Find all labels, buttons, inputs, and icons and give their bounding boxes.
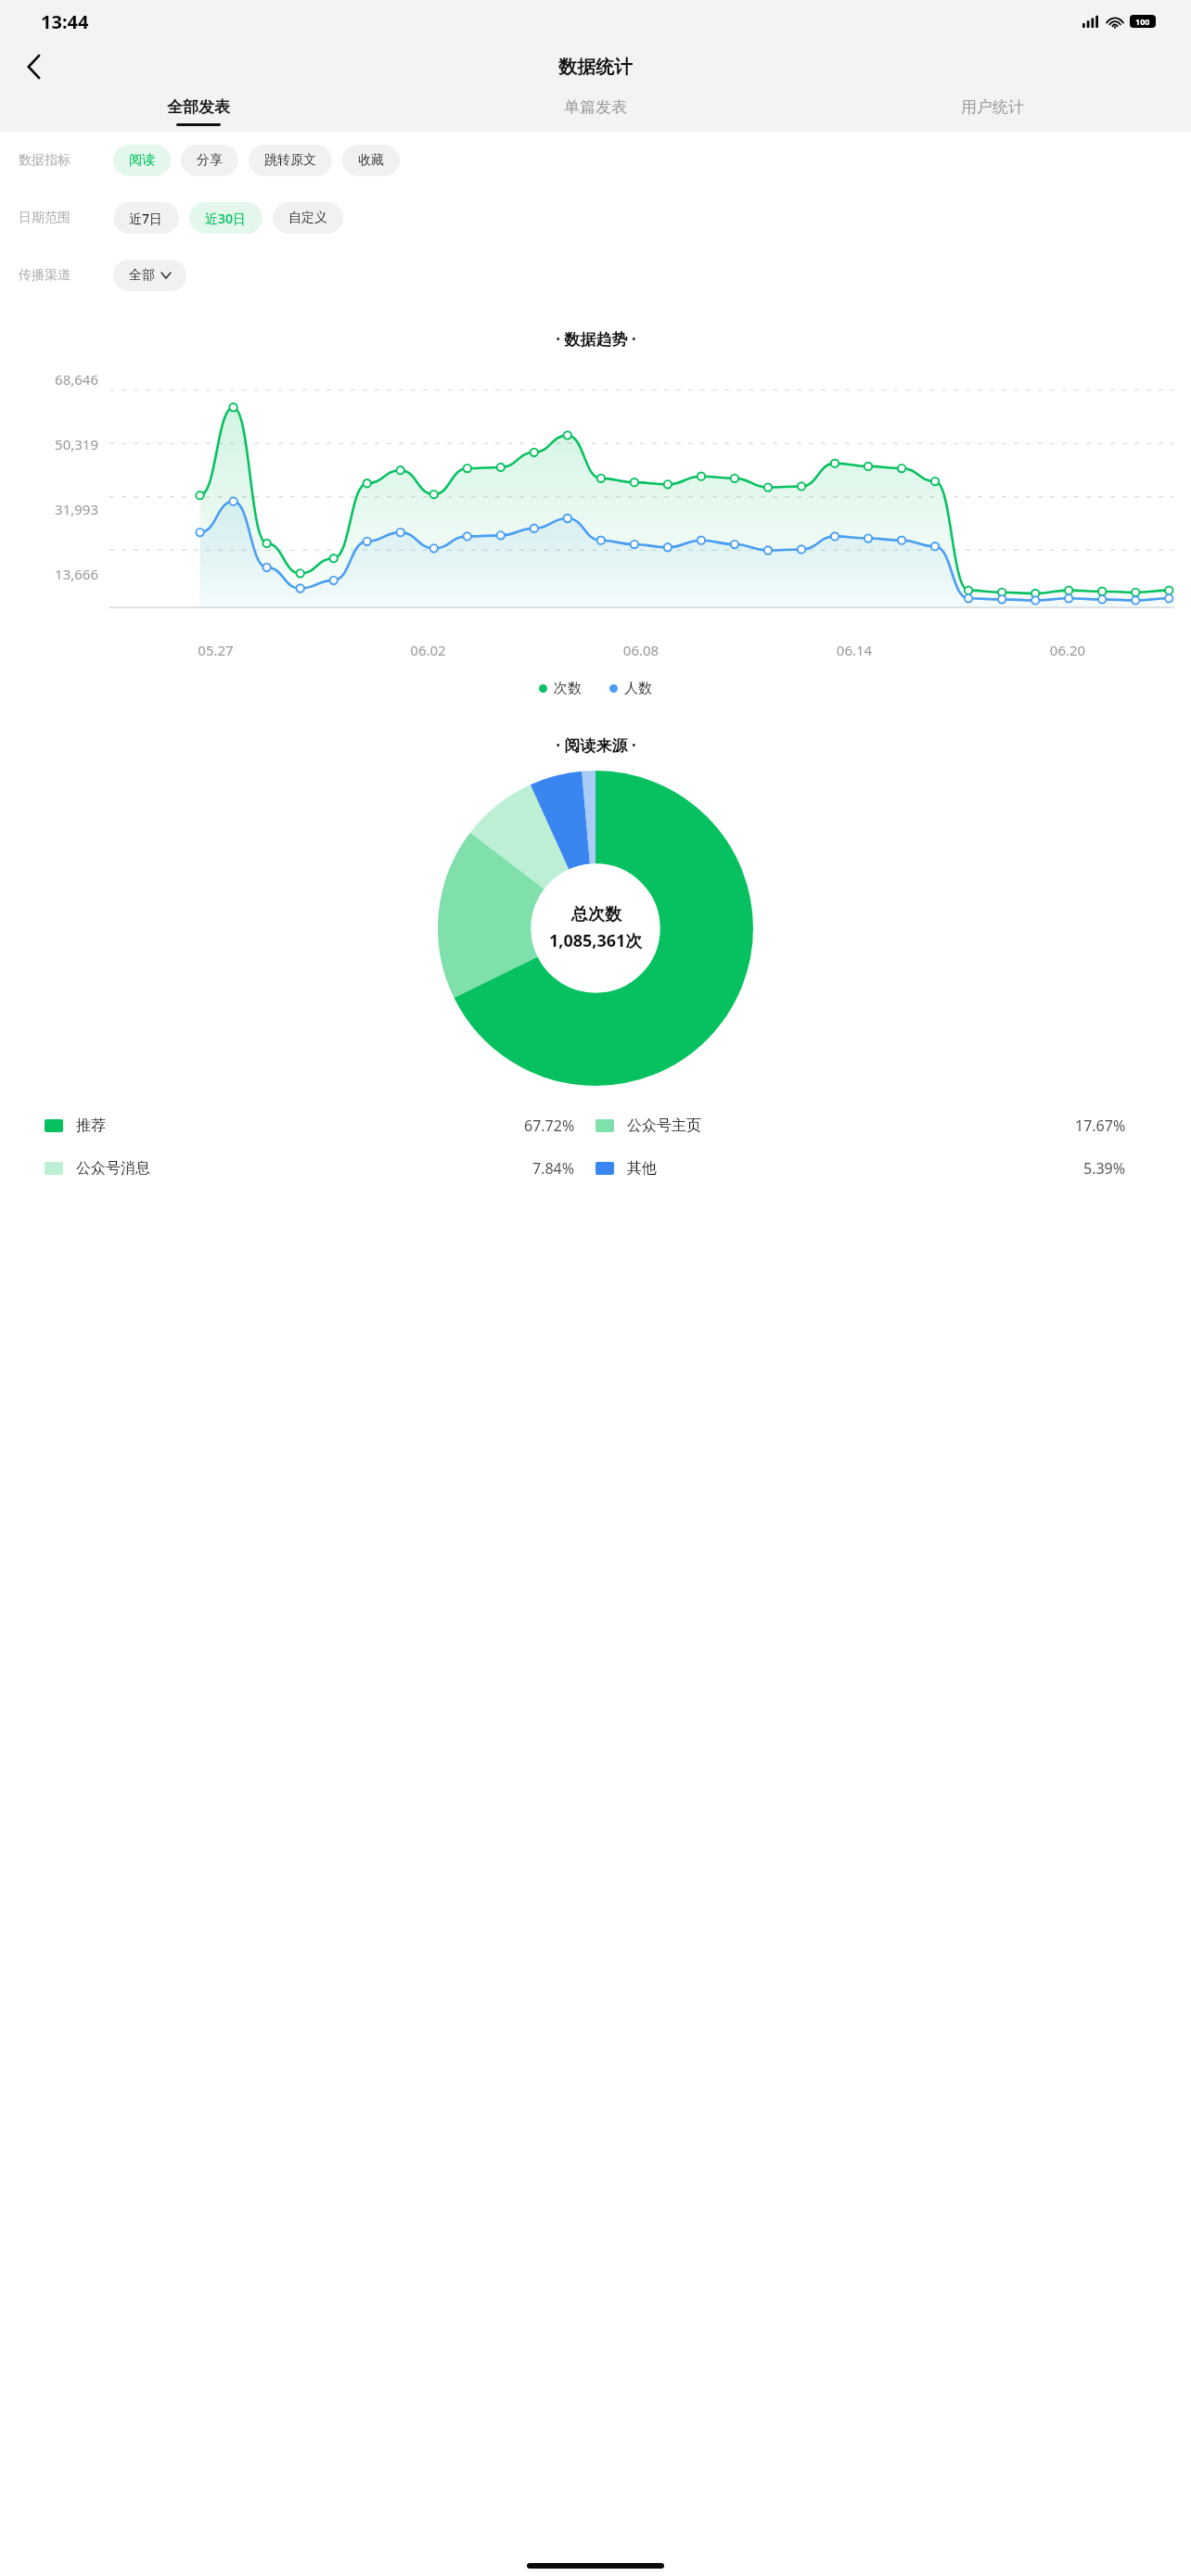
button[interactable]: 自定义 <box>273 202 343 234</box>
staticText: 06.08 <box>534 641 748 659</box>
button[interactable]: 分享 <box>181 145 238 176</box>
staticText: 全部发表 <box>167 97 230 117</box>
button[interactable]: 阅读 <box>113 145 171 176</box>
staticText: 近7日 <box>129 210 163 227</box>
staticText: 推荐 <box>76 1116 106 1135</box>
staticText: · 阅读来源 · <box>556 734 636 756</box>
button[interactable]: 全部发表 <box>0 91 397 132</box>
staticText: 06.20 <box>961 641 1174 659</box>
staticText: 06.02 <box>322 641 534 659</box>
button[interactable]: Back <box>13 46 54 87</box>
staticText: 次数 <box>554 680 582 697</box>
staticText: 7.84% <box>532 1158 575 1179</box>
staticText: 数据指标 <box>19 152 113 169</box>
button[interactable]: 人数 <box>609 680 652 697</box>
staticText: 68,646 <box>0 370 98 389</box>
staticText: 06.14 <box>748 641 961 659</box>
staticText: 总次数 <box>571 904 621 925</box>
staticText: 67.72% <box>524 1116 575 1136</box>
staticText: 自定义 <box>288 210 327 226</box>
staticText: 单篇发表 <box>564 97 627 117</box>
staticText: 全部 <box>129 267 155 284</box>
staticText: 其他 <box>627 1159 657 1178</box>
staticText: 近30日 <box>205 210 247 227</box>
staticText: · 数据趋势 · <box>556 328 636 350</box>
staticText: 用户统计 <box>961 97 1024 117</box>
button[interactable]: 近30日 <box>189 202 263 234</box>
staticText: 分享 <box>197 152 223 169</box>
button[interactable]: 其他 <box>595 1158 1146 1179</box>
button[interactable]: 用户统计 <box>794 91 1191 132</box>
button[interactable]: 公众号主页 <box>595 1116 1146 1136</box>
staticText: 1,085,361次 <box>549 929 643 952</box>
staticText: 日期范围 <box>19 210 113 226</box>
button[interactable]: 公众号消息 <box>45 1158 595 1179</box>
staticText: 05.27 <box>109 641 322 659</box>
staticText: 17.67% <box>1075 1116 1126 1136</box>
staticText: 13:44 <box>41 9 89 34</box>
staticText: 人数 <box>624 680 652 697</box>
button[interactable]: 跳转原文 <box>249 145 332 176</box>
button[interactable]: 次数 <box>539 680 582 697</box>
button[interactable]: 近7日 <box>113 202 179 234</box>
button[interactable]: 收藏 <box>342 145 400 176</box>
staticText: 13,666 <box>0 565 98 583</box>
staticText: 跳转原文 <box>264 152 316 169</box>
button[interactable]: 单篇发表 <box>397 91 794 132</box>
staticText: 传播渠道 <box>19 267 113 284</box>
staticText: 数据统计 <box>558 56 633 79</box>
staticText: 收藏 <box>358 152 384 169</box>
staticText: 100 <box>1135 16 1150 27</box>
button[interactable]: 推荐 <box>45 1116 595 1136</box>
staticText: 31,993 <box>0 500 98 518</box>
staticText: 5.39% <box>1083 1158 1126 1179</box>
staticText: 公众号消息 <box>76 1159 150 1178</box>
staticText: 公众号主页 <box>627 1116 701 1135</box>
staticText: 阅读 <box>129 152 155 169</box>
button[interactable]: 全部 <box>113 260 186 291</box>
staticText: 50,319 <box>0 435 98 453</box>
